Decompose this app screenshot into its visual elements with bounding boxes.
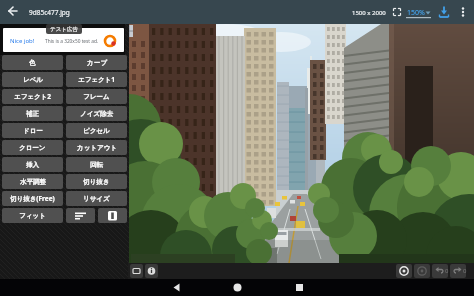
button[interactable]: エフェクト2 [2, 89, 63, 104]
button[interactable] [450, 264, 466, 278]
button[interactable]: フィット [2, 208, 63, 223]
button[interactable]: ノイズ除去 [66, 106, 127, 121]
staticText: 色 [29, 59, 36, 67]
button[interactable] [432, 264, 448, 278]
staticText: ピクセル [83, 127, 110, 135]
staticText: 0 [463, 267, 467, 275]
button[interactable] [98, 208, 127, 223]
button[interactable] [130, 264, 143, 278]
button[interactable]: 150% [405, 2, 435, 22]
staticText: 切り抜き [83, 178, 110, 186]
button[interactable] [168, 279, 185, 296]
staticText: 0 [445, 267, 449, 275]
staticText: 1500 x 2000 [352, 9, 386, 17]
button[interactable]: カットアウト [66, 140, 127, 155]
staticText: 切り抜き(Free) [10, 194, 55, 203]
button[interactable] [436, 3, 452, 21]
button[interactable] [390, 5, 404, 19]
button[interactable] [414, 264, 430, 278]
staticText: 150% [407, 8, 425, 18]
button[interactable]: カーブ [66, 55, 127, 70]
staticText: クローン [19, 144, 46, 152]
staticText: 9d85c477.jpg [29, 8, 70, 17]
button[interactable]: エフェクト1 [66, 72, 127, 87]
staticText: レベル [23, 76, 43, 84]
staticText: ノイズ除去 [80, 110, 113, 118]
button[interactable]: Nice job! [3, 28, 124, 52]
button[interactable]: リサイズ [66, 191, 127, 206]
button[interactable] [125, 24, 474, 263]
staticText: 補正 [26, 110, 39, 118]
staticText: This is a 320x50 test ad. [45, 38, 99, 45]
button[interactable]: フレーム [66, 89, 127, 104]
button[interactable]: ピクセル [66, 123, 127, 138]
staticText: 挿入 [26, 161, 39, 169]
button[interactable]: レベル [2, 72, 63, 87]
staticText: Nice job! [10, 37, 35, 45]
button[interactable]: 水平調整 [2, 174, 63, 189]
button[interactable] [145, 264, 158, 278]
staticText: カーブ [87, 59, 107, 67]
staticText: テスト広告 [50, 26, 78, 33]
button[interactable] [229, 279, 246, 296]
staticText: フィット [19, 212, 46, 220]
staticText: エフェクト1 [78, 75, 115, 84]
button[interactable]: クローン [2, 140, 63, 155]
button[interactable]: 回転 [66, 157, 127, 172]
staticText: 回転 [90, 161, 103, 169]
button[interactable] [4, 2, 24, 22]
staticText: カットアウト [77, 144, 117, 152]
staticText: フレーム [83, 93, 110, 101]
button[interactable]: 色 [2, 55, 63, 70]
staticText: エフェクト2 [14, 92, 51, 101]
button[interactable] [291, 279, 308, 296]
button[interactable] [456, 2, 470, 22]
button[interactable]: ドロー [2, 123, 63, 138]
button[interactable]: 挿入 [2, 157, 63, 172]
staticText: ドロー [23, 127, 43, 135]
button[interactable] [396, 264, 412, 278]
button[interactable]: 切り抜き [66, 174, 127, 189]
staticText: リサイズ [83, 195, 110, 203]
button[interactable]: 切り抜き(Free) [2, 191, 63, 206]
button[interactable] [66, 208, 95, 223]
staticText: 水平調整 [20, 178, 46, 186]
button[interactable]: 補正 [2, 106, 63, 121]
